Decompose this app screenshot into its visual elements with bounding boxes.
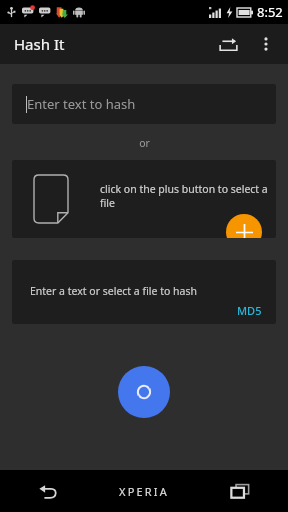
button[interactable]: Home <box>96 470 192 512</box>
staticText: Enter text to hash <box>27 95 136 113</box>
button[interactable]: Recent apps <box>192 470 288 512</box>
button[interactable]: MD5 <box>233 301 266 320</box>
button[interactable]: click on the plus button to select a fil… <box>12 160 276 238</box>
button[interactable]: Share <box>208 24 248 64</box>
staticText: Enter a text or select a file to hash <box>30 284 197 298</box>
button[interactable]: Enter text to hash <box>12 84 276 124</box>
staticText: MD5 <box>237 303 262 318</box>
staticText: 8:52 <box>257 3 283 21</box>
button[interactable]: More options <box>248 26 284 62</box>
button[interactable]: Back <box>0 470 96 512</box>
staticText: Hash It <box>14 34 65 54</box>
button[interactable]: Enter a text or select a file to hash <box>12 260 276 324</box>
staticText: or <box>139 136 150 150</box>
staticText: XPERIA <box>119 484 170 499</box>
button[interactable]: Compute hash <box>118 366 170 418</box>
button[interactable]: Select a file <box>226 214 262 238</box>
staticText: click on the plus button to select a fil… <box>100 182 276 210</box>
